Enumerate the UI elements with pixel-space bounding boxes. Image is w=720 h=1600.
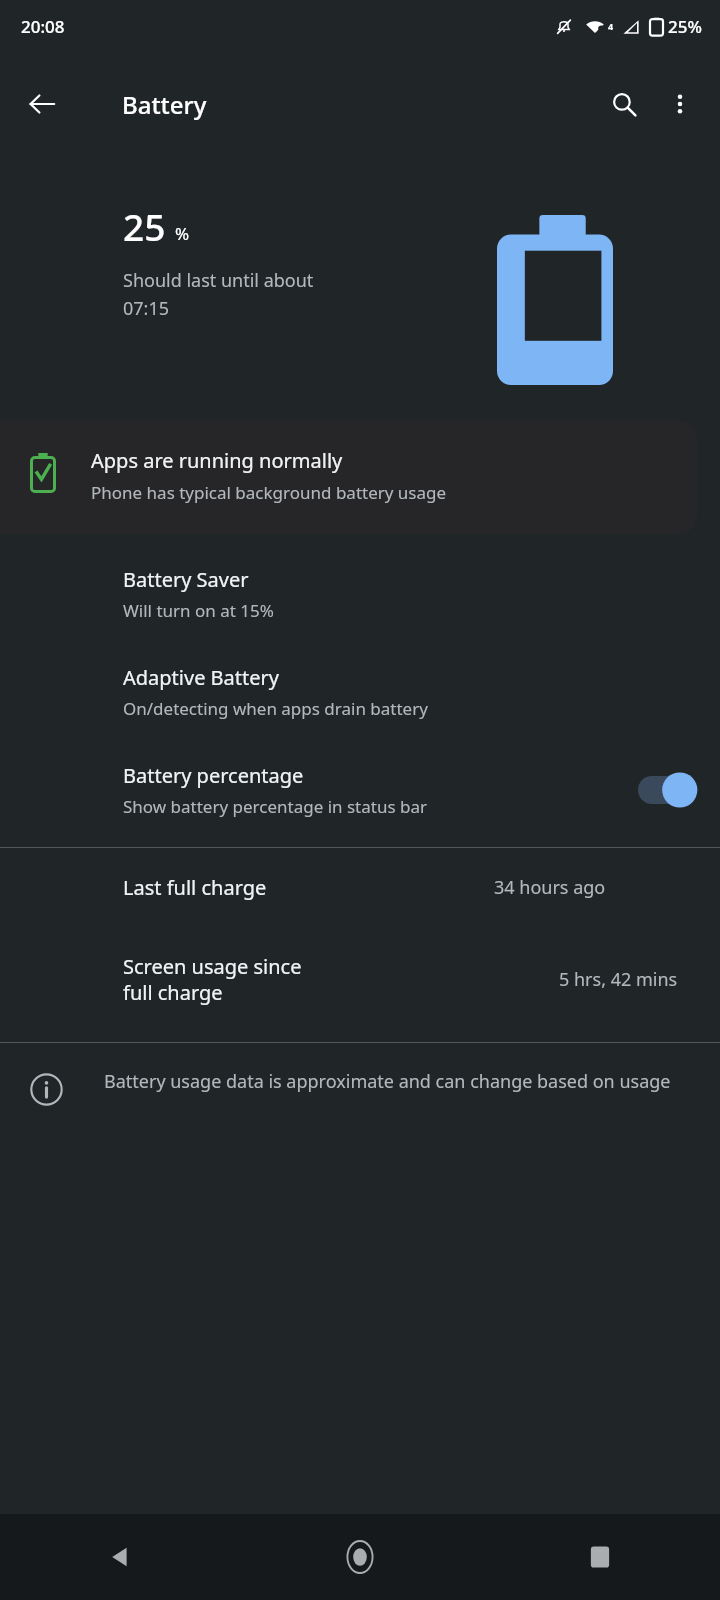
staticText: % <box>175 222 190 245</box>
staticText: Adaptive Battery <box>123 664 280 691</box>
staticText: Phone has typical background battery usa… <box>91 481 447 504</box>
staticText: 20:08 <box>21 15 65 38</box>
staticText: Show battery percentage in status bar <box>123 795 427 818</box>
staticText: Apps are running normally <box>91 447 343 474</box>
button[interactable]: More options <box>652 76 708 132</box>
staticText: Will turn on at 15% <box>123 599 274 622</box>
button[interactable]: Battery percentage <box>0 742 720 840</box>
button[interactable]: Home <box>322 1519 398 1595</box>
staticText: 25 <box>123 201 166 251</box>
staticText: 34 hours ago <box>494 875 606 900</box>
button[interactable]: Battery percentage toggle, on <box>638 770 696 810</box>
button[interactable]: Recent apps <box>562 1519 638 1595</box>
staticText: 25% <box>668 15 702 38</box>
button[interactable]: Battery Saver <box>0 546 720 644</box>
staticText: Battery percentage <box>123 762 304 789</box>
staticText: Last full charge <box>123 874 267 901</box>
staticText: Battery <box>122 88 207 121</box>
button[interactable]: Back <box>82 1519 158 1595</box>
staticText: On/detecting when apps drain battery <box>123 697 428 720</box>
staticText: Battery Saver <box>123 566 249 593</box>
staticText: 4 <box>608 20 614 32</box>
button[interactable]: Last full charge <box>0 848 720 927</box>
staticText: Battery usage data is approximate and ca… <box>104 1069 671 1094</box>
staticText: Should last until about 07:15 <box>123 268 314 320</box>
staticText: 5 hrs, 42 mins <box>559 967 678 992</box>
button[interactable]: Screen usage since full charge <box>0 927 720 1032</box>
button[interactable]: Apps are running normally <box>0 421 697 534</box>
button[interactable]: Adaptive Battery <box>0 644 720 742</box>
button[interactable]: Search <box>596 76 652 132</box>
button[interactable]: Back <box>14 76 70 132</box>
staticText: Screen usage since full charge <box>123 953 336 1006</box>
